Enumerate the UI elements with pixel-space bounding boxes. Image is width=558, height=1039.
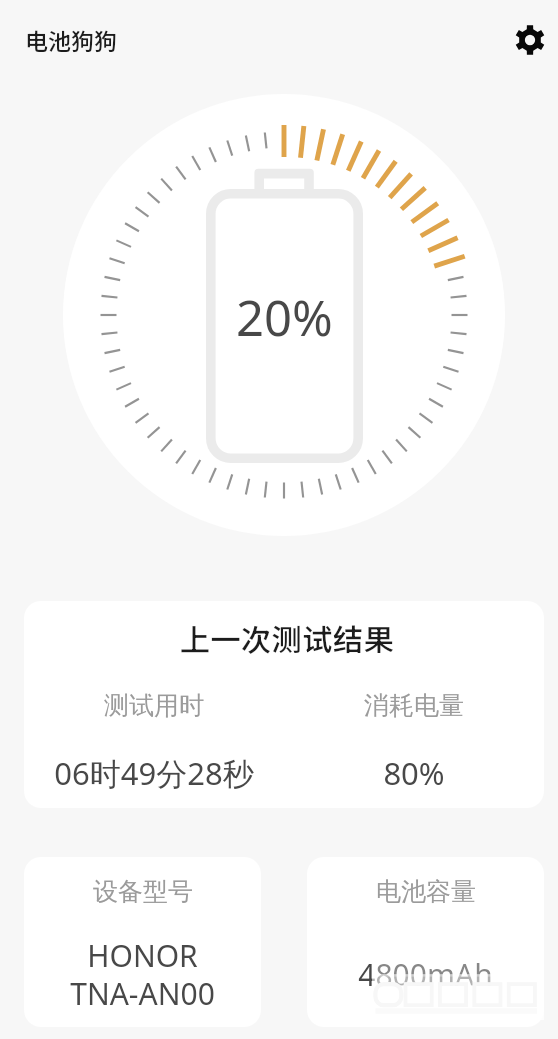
button[interactable]: Settings (508, 18, 552, 62)
staticText: 测试用时 (104, 690, 204, 721)
staticText: 上一次测试结果 (27, 616, 544, 659)
staticText: 06时49分28秒 (54, 752, 254, 794)
staticText: 消耗电量 (364, 690, 464, 721)
staticText: 电池狗狗 (25, 23, 117, 56)
staticText: 20% (236, 284, 333, 351)
staticText: HONOR TNA-AN00 (24, 935, 261, 1014)
staticText: 电池容量 (376, 876, 476, 907)
staticText: 80% (383, 752, 445, 794)
button[interactable]: 设备型号 (24, 857, 261, 1027)
staticText: 设备型号 (93, 876, 193, 907)
button[interactable]: 电池容量 (307, 857, 544, 1027)
button[interactable]: 上一次测试结果 (24, 601, 544, 808)
staticText: 4800mAh (307, 954, 544, 995)
